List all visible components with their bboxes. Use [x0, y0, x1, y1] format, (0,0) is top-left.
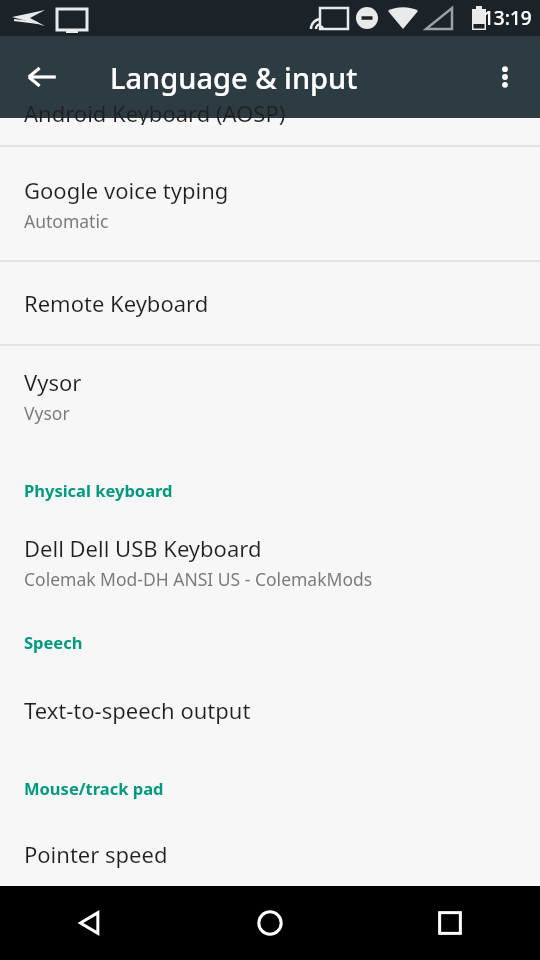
staticText: Pointer speed: [24, 839, 168, 869]
button[interactable]: Dell Dell USB Keyboard: [0, 523, 540, 601]
staticText: Dell Dell USB Keyboard: [24, 533, 262, 563]
staticText: Vysor: [24, 401, 70, 425]
button[interactable]: Vysor: [0, 346, 540, 445]
staticText: Remote Keyboard: [24, 288, 209, 318]
button[interactable]: Pointer speed: [0, 821, 540, 886]
button[interactable]: Navigate up: [16, 51, 68, 103]
button[interactable]: Recent apps: [360, 886, 540, 960]
staticText: Colemak Mod-DH ANSI US - ColemakMods: [24, 567, 373, 591]
staticText: Mouse/track pad: [24, 777, 164, 799]
button[interactable]: More options: [479, 51, 531, 103]
button[interactable]: Back: [0, 886, 180, 960]
staticText: Android Keyboard (AOSP): [24, 98, 286, 125]
staticText: Physical keyboard: [24, 479, 173, 501]
button[interactable]: Home: [180, 886, 360, 960]
staticText: Automatic: [24, 209, 109, 233]
staticText: Vysor: [24, 367, 82, 397]
button[interactable]: Text-to-speech output: [0, 675, 540, 745]
button[interactable]: Google voice typing: [0, 147, 540, 260]
staticText: 13:19: [483, 5, 532, 31]
staticText: Language & input: [110, 58, 358, 97]
button[interactable]: Remote Keyboard: [0, 262, 540, 344]
staticText: Text-to-speech output: [24, 695, 251, 725]
staticText: Speech: [24, 631, 83, 653]
staticText: Google voice typing: [24, 175, 229, 205]
